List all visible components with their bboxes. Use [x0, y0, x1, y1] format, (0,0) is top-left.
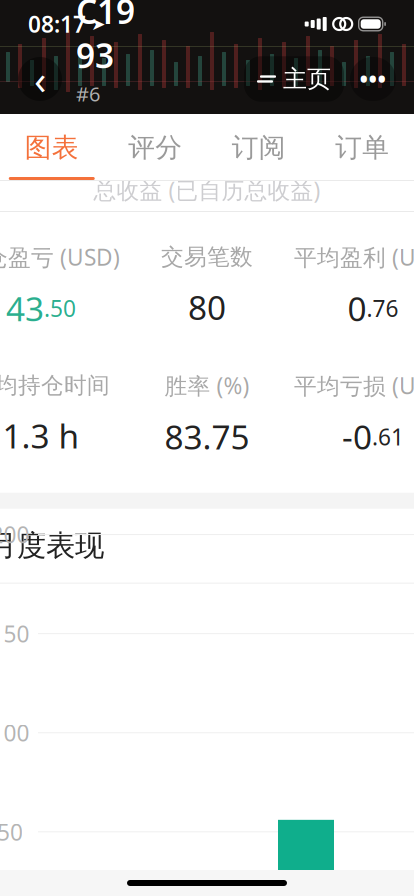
staticText: 胜率 (%)	[164, 370, 249, 400]
staticText: 月度表现	[0, 528, 104, 564]
staticText: .50	[44, 293, 76, 323]
button[interactable]: 订阅	[207, 114, 310, 180]
staticText: •••	[359, 64, 386, 94]
staticText: 总收益 (已自历总收益)	[93, 175, 320, 205]
staticText: 80	[188, 285, 226, 329]
button[interactable]: 图表	[0, 114, 103, 180]
staticText: 交易笔数	[161, 243, 253, 271]
staticText: 150	[0, 619, 29, 649]
button[interactable]: Back	[18, 57, 62, 101]
staticText: 100	[0, 718, 29, 748]
staticText: ‹	[34, 52, 46, 105]
staticText: 主页	[283, 64, 331, 94]
staticText: 200	[0, 519, 29, 550]
staticText: 83.75	[164, 414, 249, 459]
button[interactable]: 评分	[103, 114, 207, 180]
button[interactable]: More options	[350, 57, 396, 101]
staticText: 平仓盈亏 (USD)	[0, 242, 120, 272]
staticText: 评分	[128, 131, 182, 164]
staticText: 平均持仓时间	[0, 371, 110, 399]
staticText: 50	[0, 817, 23, 847]
staticText: -0	[342, 414, 372, 459]
staticText: 0	[347, 286, 366, 330]
staticText: 08:17	[28, 9, 86, 39]
staticText: 43	[6, 286, 44, 330]
staticText: ➤	[91, 14, 106, 34]
button[interactable]: 订单	[310, 114, 414, 180]
staticText: 订单	[335, 131, 389, 164]
button[interactable]: 主页	[244, 56, 344, 102]
staticText: 图表	[25, 131, 79, 164]
staticText: 1.3 h	[2, 413, 79, 458]
staticText: 订阅	[232, 131, 286, 164]
staticText: ZYC1993	[76, 0, 135, 78]
staticText: #6 USGVU–LiveAsia	[76, 80, 144, 213]
staticText: .61	[372, 421, 404, 452]
staticText: 平均亏损 (USD)	[294, 370, 414, 400]
staticText: .76	[366, 293, 398, 323]
staticText: 平均盈利 (USD)	[294, 242, 414, 272]
